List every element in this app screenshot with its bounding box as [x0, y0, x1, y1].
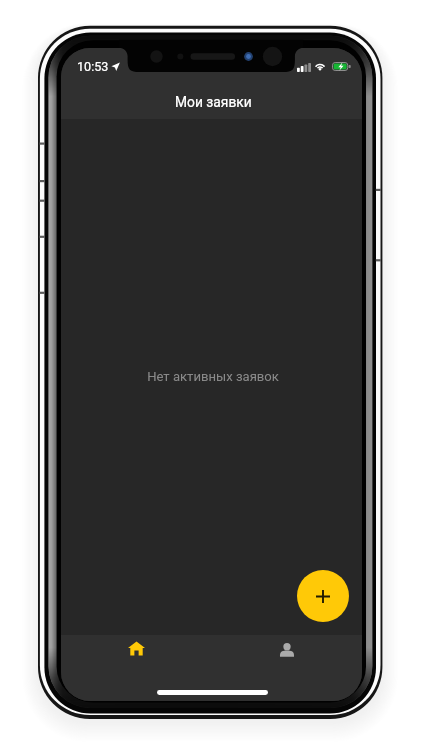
staticText: 10:53	[77, 59, 109, 74]
button[interactable]: Add request	[297, 570, 349, 622]
staticText: Нет активных заявок	[147, 369, 279, 384]
staticText: Мои заявки	[175, 94, 252, 110]
button[interactable]: Profile	[250, 635, 325, 673]
button[interactable]: Home	[99, 635, 174, 673]
